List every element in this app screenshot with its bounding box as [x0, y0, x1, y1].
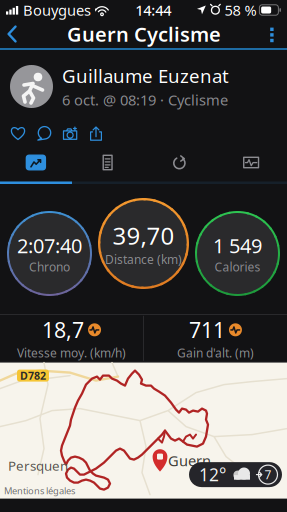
staticText: 2:07:40 [17, 232, 82, 259]
button[interactable]: Laps [143, 148, 215, 177]
button[interactable]: Back [0, 20, 28, 48]
button[interactable]: Add photo [57, 119, 83, 147]
staticText: 14:44 [135, 0, 171, 20]
button[interactable]: Comment [31, 119, 57, 147]
staticText: 711 [189, 316, 225, 344]
staticText: Guern Cyclisme [67, 21, 221, 47]
staticText: 7 [264, 467, 271, 482]
button[interactable]: Summary [0, 148, 72, 177]
staticText: Persquen [8, 457, 68, 474]
staticText: Guillaume Euzenat [62, 63, 229, 88]
staticText: Calories [214, 259, 260, 275]
button[interactable]: Like [5, 119, 31, 147]
staticText: Bouygues [19, 0, 91, 20]
staticText: Guern [168, 451, 211, 470]
staticText: 6 oct. @ 08:19 · Cyclisme [62, 90, 228, 110]
staticText: Distance (km) [105, 251, 182, 267]
staticText: D782 [20, 368, 46, 383]
staticText: 18,7 [42, 316, 84, 344]
staticText: 12° [199, 463, 226, 486]
staticText: 1 549 [213, 232, 262, 259]
staticText: Mentions légales [4, 484, 75, 497]
button[interactable]: Charts [215, 148, 287, 177]
staticText: Chrono [29, 259, 70, 275]
staticText: 58 % [224, 0, 256, 20]
staticText: Vitesse moy. (km/h) [17, 345, 126, 361]
button[interactable]: Share [83, 119, 109, 147]
staticText: 39,70 [112, 220, 174, 251]
button[interactable]: Details [72, 148, 144, 177]
staticText: Gain d'alt. (m) [177, 345, 254, 361]
button[interactable]: More options [260, 20, 287, 48]
